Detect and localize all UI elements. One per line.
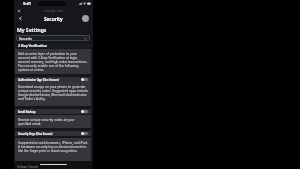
staticText: Receive unique security codes at your sp… [18, 118, 92, 126]
staticText: Security Keys (One Secure) [18, 132, 53, 136]
button[interactable]: Close [17, 9, 21, 13]
button[interactable]: Security Keys (One Secure) [15, 131, 91, 136]
button[interactable]: Authenticator App (One Secure) [15, 77, 91, 82]
staticText: Supported on web browsers, iPhone, and i… [18, 141, 92, 153]
staticText: My Settings [17, 27, 47, 34]
staticText: Software Tutorial [17, 165, 38, 169]
button[interactable]: Email Backup [15, 109, 91, 114]
staticText: Authenticator App (One Secure) [18, 78, 60, 82]
button[interactable]: Toggle Authenticator App (One Secure) [81, 78, 88, 81]
button[interactable]: Security [16, 35, 90, 41]
button[interactable]: Toggle Security Keys (One Secure) [81, 132, 88, 135]
button[interactable]: Back [18, 16, 23, 21]
staticText: Security [44, 16, 63, 22]
staticText: 2 Step Verification [18, 44, 47, 48]
staticText: Download an app on your phone to generat… [18, 85, 92, 101]
button[interactable]: Profile [82, 15, 89, 22]
staticText: Security [19, 36, 32, 41]
button[interactable]: Toggle Email Backup [81, 110, 88, 113]
staticText: Email Backup [18, 110, 36, 114]
button[interactable]: 2 Step Verification [15, 43, 91, 48]
staticText: example.com [44, 9, 63, 13]
staticText: 9:41 [23, 1, 31, 6]
staticText: Add an extra layer of protection to your… [18, 52, 92, 72]
